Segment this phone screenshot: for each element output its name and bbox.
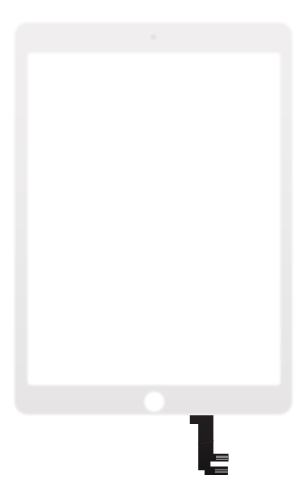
button[interactable]: White iPad touch screen digitizer with f… (0, 0, 307, 500)
